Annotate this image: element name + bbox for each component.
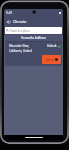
staticText: Default <box>47 44 57 48</box>
staticText: California, United <box>9 49 32 53</box>
staticText: Climate <box>13 19 27 24</box>
button[interactable]: Back <box>4 17 13 26</box>
staticText: Search a place <box>10 29 31 33</box>
staticText: Favourite Address <box>21 36 46 40</box>
staticText: 9:41 <box>6 11 13 15</box>
staticText: Mountain View, <box>9 44 30 48</box>
staticText: Set as <box>46 58 54 62</box>
button[interactable]: Search a place <box>5 27 62 34</box>
button[interactable]: Set as <box>42 55 61 64</box>
